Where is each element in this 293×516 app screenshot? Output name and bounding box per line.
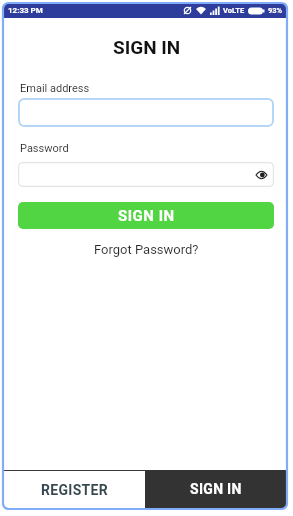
staticText: SIGN IN bbox=[190, 481, 242, 497]
staticText: Password bbox=[20, 142, 69, 155]
button[interactable]: SIGN IN bbox=[145, 470, 287, 508]
staticText: SIGN IN bbox=[113, 36, 181, 58]
staticText: 12:33 PM bbox=[8, 6, 43, 15]
button[interactable]: Forgot Password? bbox=[94, 242, 199, 257]
staticText: SIGN IN bbox=[118, 207, 175, 225]
staticText: 93% bbox=[268, 6, 283, 15]
button[interactable] bbox=[18, 98, 274, 127]
button[interactable]: REGISTER bbox=[4, 471, 145, 508]
button[interactable]: SIGN IN bbox=[18, 202, 274, 229]
button[interactable] bbox=[18, 162, 274, 187]
staticText: Email address bbox=[20, 82, 90, 95]
staticText: REGISTER bbox=[41, 482, 108, 498]
staticText: VoLTE bbox=[223, 6, 245, 15]
